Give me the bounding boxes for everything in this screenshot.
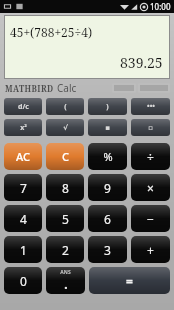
staticText: 45+(788+25÷4) xyxy=(10,24,93,40)
staticText: ▫ xyxy=(148,124,153,132)
button[interactable]: C xyxy=(46,143,84,170)
other: Speaker grille xyxy=(139,84,169,92)
staticText: ( xyxy=(64,102,67,112)
button[interactable]: ) xyxy=(88,98,127,115)
staticText: AC xyxy=(16,149,30,164)
staticText: 839.25 xyxy=(120,53,163,72)
button[interactable]: ▫ xyxy=(131,119,170,136)
button[interactable]: ÷ xyxy=(131,143,170,170)
button[interactable]: 6 xyxy=(88,205,127,232)
button[interactable]: 2 xyxy=(46,236,84,263)
button[interactable]: 3 xyxy=(88,236,127,263)
button[interactable]: 8 xyxy=(46,174,84,201)
staticText: d/c xyxy=(18,102,29,112)
button[interactable]: 5 xyxy=(46,205,84,232)
staticText: Calc xyxy=(57,81,77,95)
staticText: √ xyxy=(63,124,68,132)
button[interactable]: − xyxy=(131,205,170,232)
staticText: 7 xyxy=(20,180,27,196)
staticText: % xyxy=(103,149,113,164)
staticText: 8 xyxy=(62,180,69,196)
button[interactable]: 7 xyxy=(4,174,42,201)
button[interactable]: 1 xyxy=(4,236,42,263)
button[interactable]: + xyxy=(131,236,170,263)
button[interactable]: d/c xyxy=(4,98,42,115)
staticText: 3 xyxy=(104,242,111,258)
staticText: MATHBIRD xyxy=(5,83,54,94)
staticText: . xyxy=(64,276,68,292)
staticText: ÷ xyxy=(147,149,154,165)
staticText: 6 xyxy=(104,211,111,227)
button[interactable]: x² xyxy=(4,119,42,136)
staticText: 4 xyxy=(20,211,27,227)
button[interactable]: ( xyxy=(46,98,84,115)
button[interactable]: = xyxy=(89,267,170,294)
button[interactable]: ••• xyxy=(131,98,170,115)
button[interactable]: AC xyxy=(4,143,42,170)
staticText: ▪ xyxy=(105,124,110,132)
button[interactable]: 0 xyxy=(4,267,42,294)
staticText: 1 xyxy=(20,242,27,258)
staticText: ANS xyxy=(60,269,71,276)
button[interactable]: 9 xyxy=(88,174,127,201)
staticText: − xyxy=(147,211,154,227)
staticText: C xyxy=(62,149,69,164)
button[interactable]: × xyxy=(131,174,170,201)
staticText: + xyxy=(147,242,154,258)
staticText: ••• xyxy=(147,102,155,112)
button[interactable]: ▪ xyxy=(88,119,127,136)
staticText: 2 xyxy=(62,242,69,258)
button[interactable]: 4 xyxy=(4,205,42,232)
button[interactable]: ANS xyxy=(46,267,85,294)
staticText: ) xyxy=(106,102,109,112)
staticText: x² xyxy=(20,123,27,133)
staticText: 5 xyxy=(62,211,69,227)
staticText: × xyxy=(147,180,154,196)
staticText: 9 xyxy=(104,180,111,196)
button[interactable]: % xyxy=(88,143,127,170)
staticText: = xyxy=(126,273,133,289)
staticText: 10:00 xyxy=(150,1,171,12)
other: Speaker grille xyxy=(113,84,135,92)
button[interactable]: √ xyxy=(46,119,84,136)
staticText: 0 xyxy=(20,273,27,289)
